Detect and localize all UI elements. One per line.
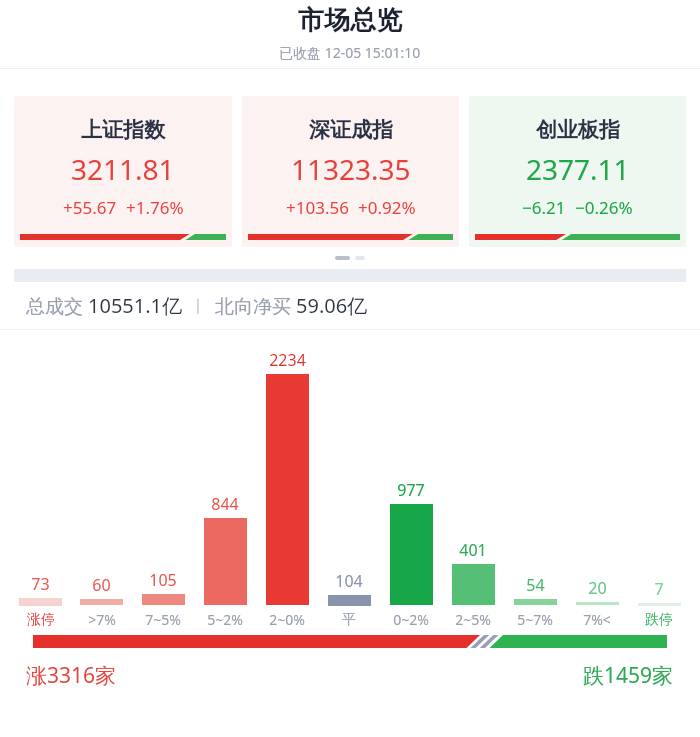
- button[interactable]: Page 2: [355, 256, 365, 260]
- staticText: 5~2%: [207, 610, 243, 629]
- button[interactable]: 深证成指: [242, 96, 459, 247]
- staticText: 深证成指: [309, 117, 393, 143]
- staticText: 已收盘 12-05 15:01:10: [279, 43, 421, 62]
- button[interactable]: 60: [71, 574, 132, 635]
- staticText: 73: [31, 573, 50, 595]
- staticText: 11323.35: [291, 150, 411, 188]
- staticText: 2377.11: [526, 150, 630, 188]
- button[interactable]: 上证指数: [14, 96, 232, 247]
- staticText: 总成交: [26, 293, 88, 319]
- staticText: 涨3316家: [26, 661, 117, 690]
- staticText: +0.92%: [358, 196, 416, 219]
- staticText: 844: [211, 493, 239, 515]
- staticText: 60: [92, 574, 111, 596]
- button[interactable]: 7: [628, 578, 690, 635]
- staticText: 59.06亿: [296, 292, 368, 319]
- staticText: 20: [588, 577, 607, 599]
- staticText: +55.67: [63, 196, 117, 219]
- staticText: 平: [342, 611, 356, 629]
- staticText: 3211.81: [71, 150, 175, 188]
- staticText: +103.56: [286, 196, 349, 219]
- staticText: 上证指数: [81, 117, 165, 143]
- staticText: 北向净买: [215, 293, 296, 319]
- staticText: 10551.1亿: [88, 292, 182, 319]
- staticText: 丨: [182, 295, 215, 317]
- staticText: −0.26%: [575, 196, 633, 219]
- staticText: 2~5%: [455, 610, 491, 629]
- staticText: 7%<: [583, 610, 611, 629]
- staticText: 977: [397, 479, 425, 501]
- staticText: 跌1459家: [583, 661, 674, 690]
- staticText: 涨停: [27, 611, 55, 629]
- button[interactable]: 104: [318, 570, 380, 635]
- staticText: 创业板指: [536, 117, 620, 143]
- staticText: 2~0%: [269, 610, 305, 629]
- button[interactable]: 73: [10, 573, 71, 635]
- staticText: 跌停: [645, 611, 673, 629]
- button[interactable]: 54: [504, 574, 566, 635]
- staticText: 0~2%: [393, 610, 429, 629]
- button[interactable]: 977: [380, 479, 442, 635]
- staticText: −6.21: [522, 196, 566, 219]
- staticText: 54: [526, 574, 545, 596]
- button[interactable]: Page 1: [335, 256, 350, 260]
- button[interactable]: 105: [132, 569, 194, 635]
- button[interactable]: 创业板指: [469, 96, 686, 247]
- staticText: 7: [654, 578, 664, 600]
- button[interactable]: 844: [194, 493, 256, 635]
- staticText: +1.76%: [126, 196, 184, 219]
- staticText: 市场总览: [298, 4, 402, 37]
- staticText: 2234: [269, 349, 306, 371]
- staticText: 7~5%: [145, 610, 181, 629]
- staticText: 401: [459, 539, 487, 561]
- staticText: 104: [335, 570, 363, 592]
- button[interactable]: 20: [566, 577, 628, 635]
- staticText: 105: [149, 569, 177, 591]
- staticText: 5~7%: [517, 610, 553, 629]
- button[interactable]: 401: [442, 539, 504, 635]
- button[interactable]: 总成交: [26, 282, 700, 329]
- staticText: >7%: [88, 610, 116, 629]
- button[interactable]: 2234: [256, 349, 318, 635]
